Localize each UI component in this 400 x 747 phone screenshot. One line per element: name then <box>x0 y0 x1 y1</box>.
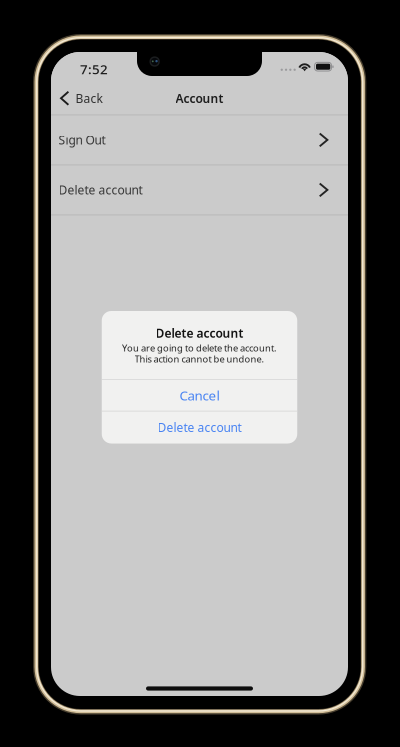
button[interactable]: Back <box>51 85 102 111</box>
button[interactable]: Delete account <box>102 411 297 443</box>
staticText: You are going to delete the account. <box>122 342 277 354</box>
button[interactable]: Delete account <box>51 165 348 214</box>
staticText: Delete account <box>155 325 243 341</box>
button[interactable]: Sign Out <box>51 115 348 164</box>
staticText: Back <box>75 90 102 106</box>
staticText: Delete account <box>58 182 142 198</box>
staticText: 7:52 <box>80 60 108 78</box>
staticText: Delete account <box>157 419 241 435</box>
staticText: Cancel <box>179 386 219 404</box>
staticText: This action cannot be undone. <box>134 353 264 365</box>
button[interactable]: Cancel <box>102 380 297 411</box>
staticText: Account <box>175 90 223 106</box>
staticText: Sign Out <box>58 132 105 148</box>
